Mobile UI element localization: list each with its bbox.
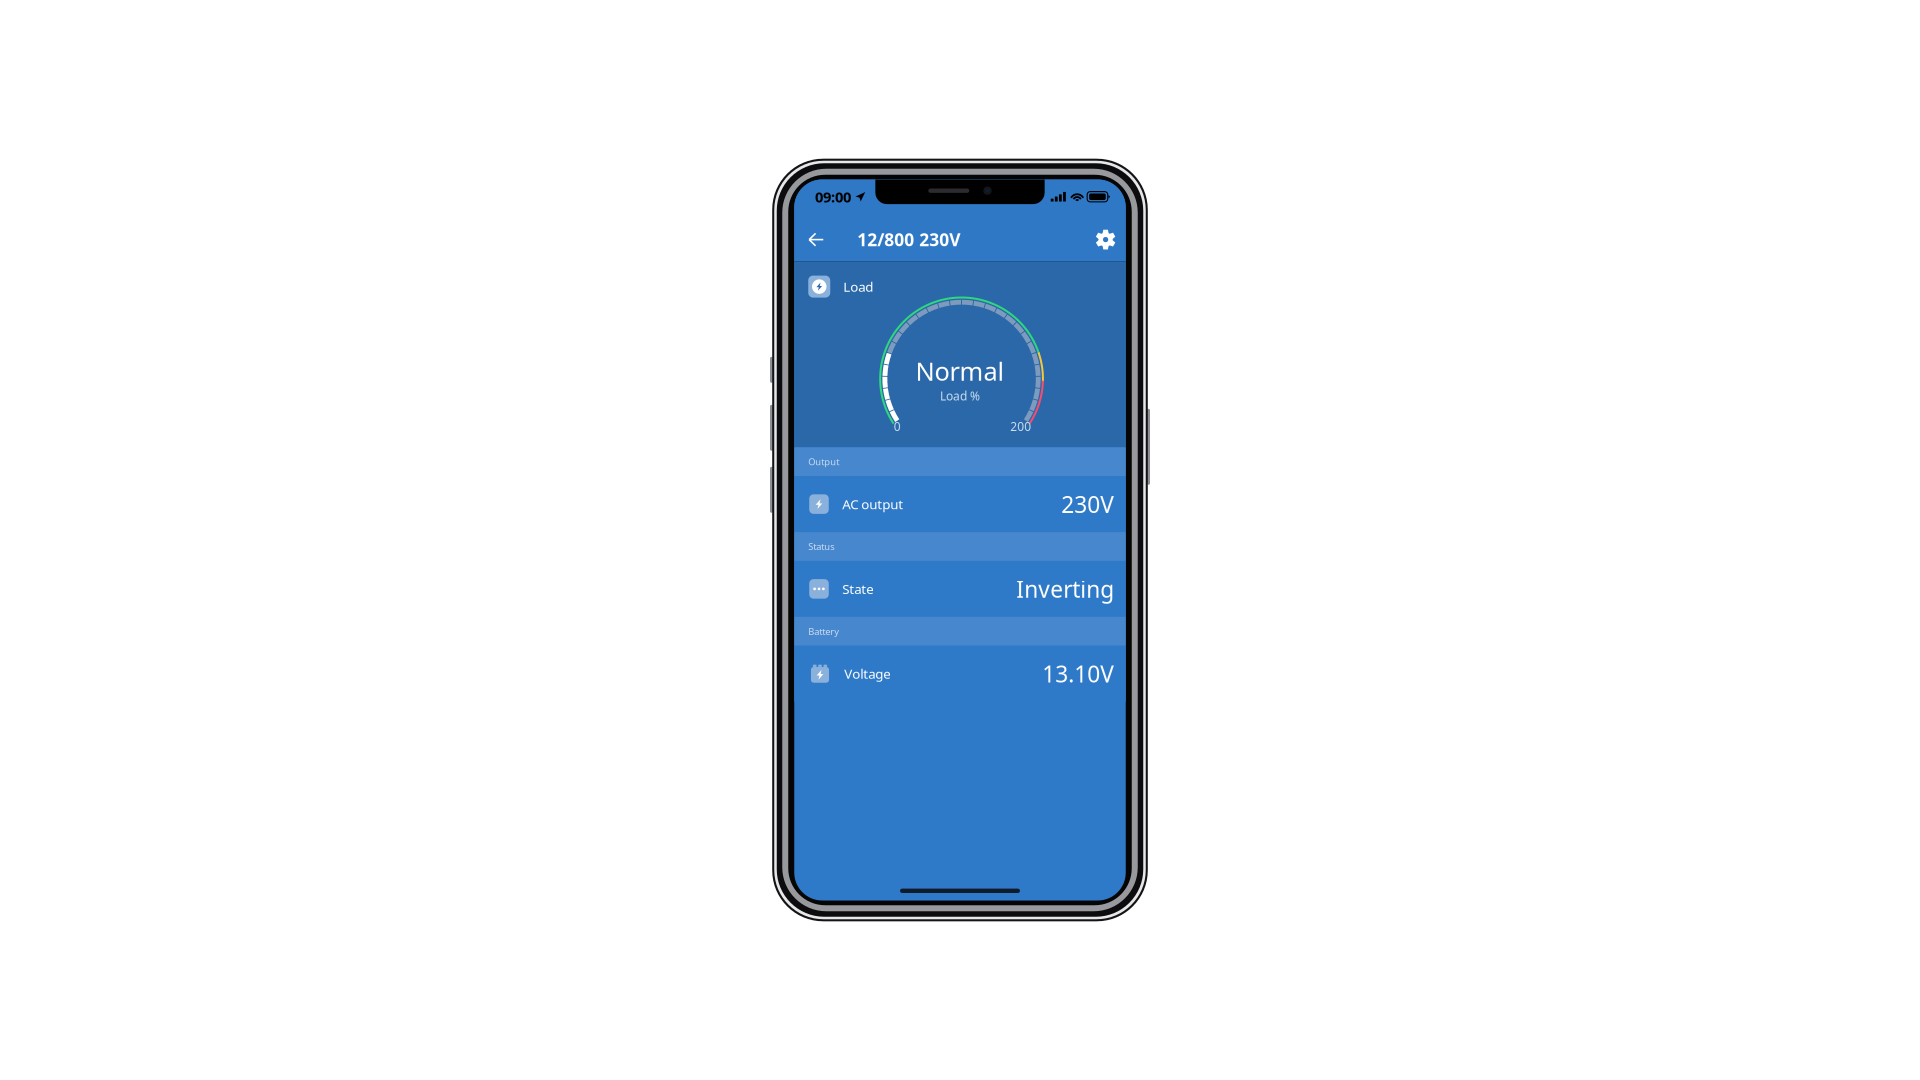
button[interactable]: Voltage	[794, 646, 1126, 702]
button[interactable]: Settings	[1091, 222, 1120, 257]
button[interactable]: State	[794, 561, 1126, 617]
staticText: Output	[808, 455, 839, 468]
staticText: 200	[1010, 418, 1031, 434]
staticText: 13.10V	[1042, 659, 1114, 689]
button[interactable]: Back	[801, 222, 831, 257]
staticText: State	[842, 580, 874, 598]
staticText: Normal	[915, 354, 1004, 388]
staticText: 230V	[1061, 489, 1114, 519]
staticText: 12/800 230V	[857, 228, 960, 251]
staticText: Inverting	[1016, 574, 1114, 604]
staticText: Battery	[808, 625, 839, 637]
staticText: Status	[808, 540, 834, 553]
staticText: Voltage	[844, 665, 891, 682]
staticText: 0	[894, 418, 901, 434]
staticText: Load %	[940, 388, 980, 404]
staticText: AC output	[842, 495, 903, 513]
staticText: Load	[843, 278, 873, 295]
button[interactable]: AC output	[794, 476, 1126, 532]
staticText: 09:00	[815, 187, 851, 206]
